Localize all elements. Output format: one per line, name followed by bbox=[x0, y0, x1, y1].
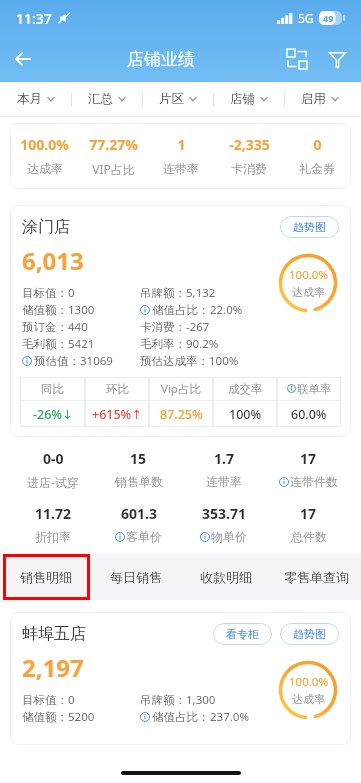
staticText: 趋势图 bbox=[293, 220, 326, 234]
staticText: 连带率 bbox=[206, 474, 242, 489]
button[interactable]: 每日销售 bbox=[91, 554, 181, 600]
staticText: 237.0% bbox=[210, 709, 249, 725]
staticText: 储值占比： bbox=[152, 710, 210, 724]
staticText: 31069 bbox=[80, 353, 113, 369]
button[interactable]: 启用 bbox=[285, 82, 355, 116]
staticText: 零售单查询 bbox=[284, 569, 349, 585]
button[interactable]: 17 bbox=[266, 504, 351, 544]
staticText: 毛利额： bbox=[22, 337, 68, 351]
button[interactable]: 收款明细 bbox=[181, 554, 271, 600]
staticText: 15 bbox=[130, 449, 147, 468]
staticText: 毛利率： bbox=[140, 337, 186, 351]
staticText: 物单价 bbox=[211, 529, 247, 544]
staticText: 2,197 bbox=[22, 651, 84, 684]
staticText: 5200 bbox=[68, 709, 95, 725]
button[interactable]: 销售明细 bbox=[0, 554, 91, 600]
staticText: -26%↓ bbox=[33, 406, 73, 423]
button[interactable]: 看专柜 bbox=[213, 623, 272, 645]
staticText: VIP占比 bbox=[92, 161, 135, 177]
staticText: 60.0% bbox=[291, 406, 327, 423]
staticText: 0 bbox=[68, 692, 75, 708]
button[interactable]: 1.7 bbox=[181, 449, 266, 489]
button[interactable]: Compare bbox=[277, 39, 317, 79]
staticText: 销售明细 bbox=[20, 569, 72, 585]
staticText: 1,300 bbox=[186, 692, 216, 708]
button[interactable]: 店铺 bbox=[214, 82, 284, 116]
staticText: 0-0 bbox=[43, 449, 64, 468]
button[interactable]: 77.27% bbox=[79, 135, 147, 177]
button[interactable]: 17 bbox=[266, 449, 351, 489]
button[interactable]: 601.3 bbox=[96, 504, 181, 544]
button[interactable]: Vip占比 bbox=[149, 377, 213, 427]
staticText: 100.0% bbox=[20, 135, 69, 154]
staticText: 储值占比： bbox=[152, 303, 210, 317]
staticText: 每日销售 bbox=[110, 569, 162, 585]
staticText: 连带件数 bbox=[290, 474, 338, 489]
staticText: 100% bbox=[229, 406, 262, 423]
staticText: 达成率 bbox=[292, 692, 325, 706]
button[interactable]: 15 bbox=[96, 449, 181, 489]
staticText: 87.25% bbox=[160, 406, 203, 423]
staticText: 礼金券 bbox=[299, 161, 335, 176]
staticText: 5421 bbox=[68, 336, 95, 352]
staticText: 353.71 bbox=[202, 504, 246, 523]
button[interactable]: 趋势图 bbox=[280, 623, 339, 645]
button[interactable]: 本月 bbox=[0, 82, 71, 116]
button[interactable]: 100.0% bbox=[10, 135, 79, 176]
button[interactable]: 1 bbox=[147, 135, 215, 176]
button[interactable]: 零售单查询 bbox=[271, 554, 361, 600]
staticText: 100.0% bbox=[289, 267, 328, 283]
button[interactable]: Back bbox=[0, 36, 46, 82]
staticText: 卡消费： bbox=[140, 320, 186, 334]
staticText: 储值额： bbox=[22, 710, 68, 724]
staticText: 本月 bbox=[17, 91, 42, 107]
staticText: 连带率 bbox=[163, 161, 199, 176]
staticText: 涂门店 bbox=[22, 217, 70, 237]
button[interactable]: 联单率 bbox=[277, 377, 341, 427]
staticText: 11.72 bbox=[35, 504, 71, 523]
staticText: 蚌埠五店 bbox=[22, 624, 86, 644]
staticText: 看专柜 bbox=[226, 627, 259, 641]
staticText: 收款明细 bbox=[200, 569, 252, 585]
staticText: 1300 bbox=[68, 302, 95, 318]
staticText: 77.27% bbox=[89, 135, 138, 154]
button[interactable]: 353.71 bbox=[181, 504, 266, 544]
staticText: 联单率 bbox=[297, 382, 332, 396]
staticText: 吊牌额： bbox=[140, 693, 186, 707]
staticText: 90.2% bbox=[186, 336, 219, 352]
staticText: 0 bbox=[313, 135, 322, 154]
button[interactable]: 环比 bbox=[85, 377, 149, 427]
button[interactable]: 0 bbox=[283, 135, 351, 176]
staticText: 同比 bbox=[41, 382, 64, 396]
staticText: 22.0% bbox=[210, 302, 243, 318]
staticText: 49 bbox=[323, 12, 334, 24]
staticText: 5G bbox=[298, 10, 314, 26]
staticText: 17 bbox=[300, 449, 317, 468]
staticText: 6,013 bbox=[22, 244, 84, 277]
staticText: -267 bbox=[186, 319, 210, 335]
button[interactable]: 11.72 bbox=[10, 504, 96, 544]
staticText: 店铺 bbox=[230, 91, 255, 107]
button[interactable]: 片区 bbox=[143, 82, 213, 116]
button[interactable]: Filter bbox=[317, 39, 357, 79]
staticText: 5,132 bbox=[186, 285, 216, 301]
button[interactable]: 0-0 bbox=[10, 449, 96, 490]
staticText: 进店-试穿 bbox=[27, 474, 79, 490]
staticText: 客单价 bbox=[126, 529, 162, 544]
staticText: 目标值： bbox=[22, 286, 68, 300]
staticText: 启用 bbox=[301, 91, 326, 107]
staticText: 601.3 bbox=[121, 504, 157, 523]
staticText: 达成率 bbox=[292, 285, 325, 299]
staticText: 0 bbox=[68, 285, 75, 301]
staticText: 预估达成率： bbox=[140, 354, 209, 368]
staticText: 预订金： bbox=[22, 320, 68, 334]
staticText: -2,335 bbox=[229, 135, 270, 154]
button[interactable]: 趋势图 bbox=[280, 216, 339, 238]
button[interactable]: 同比 bbox=[20, 377, 85, 427]
staticText: 1.7 bbox=[214, 449, 234, 468]
button[interactable]: -2,335 bbox=[215, 135, 283, 176]
staticText: Vip占比 bbox=[161, 381, 201, 397]
button[interactable]: 成交率 bbox=[213, 377, 277, 427]
button[interactable]: 汇总 bbox=[72, 82, 142, 116]
staticText: 储值额： bbox=[22, 303, 68, 317]
